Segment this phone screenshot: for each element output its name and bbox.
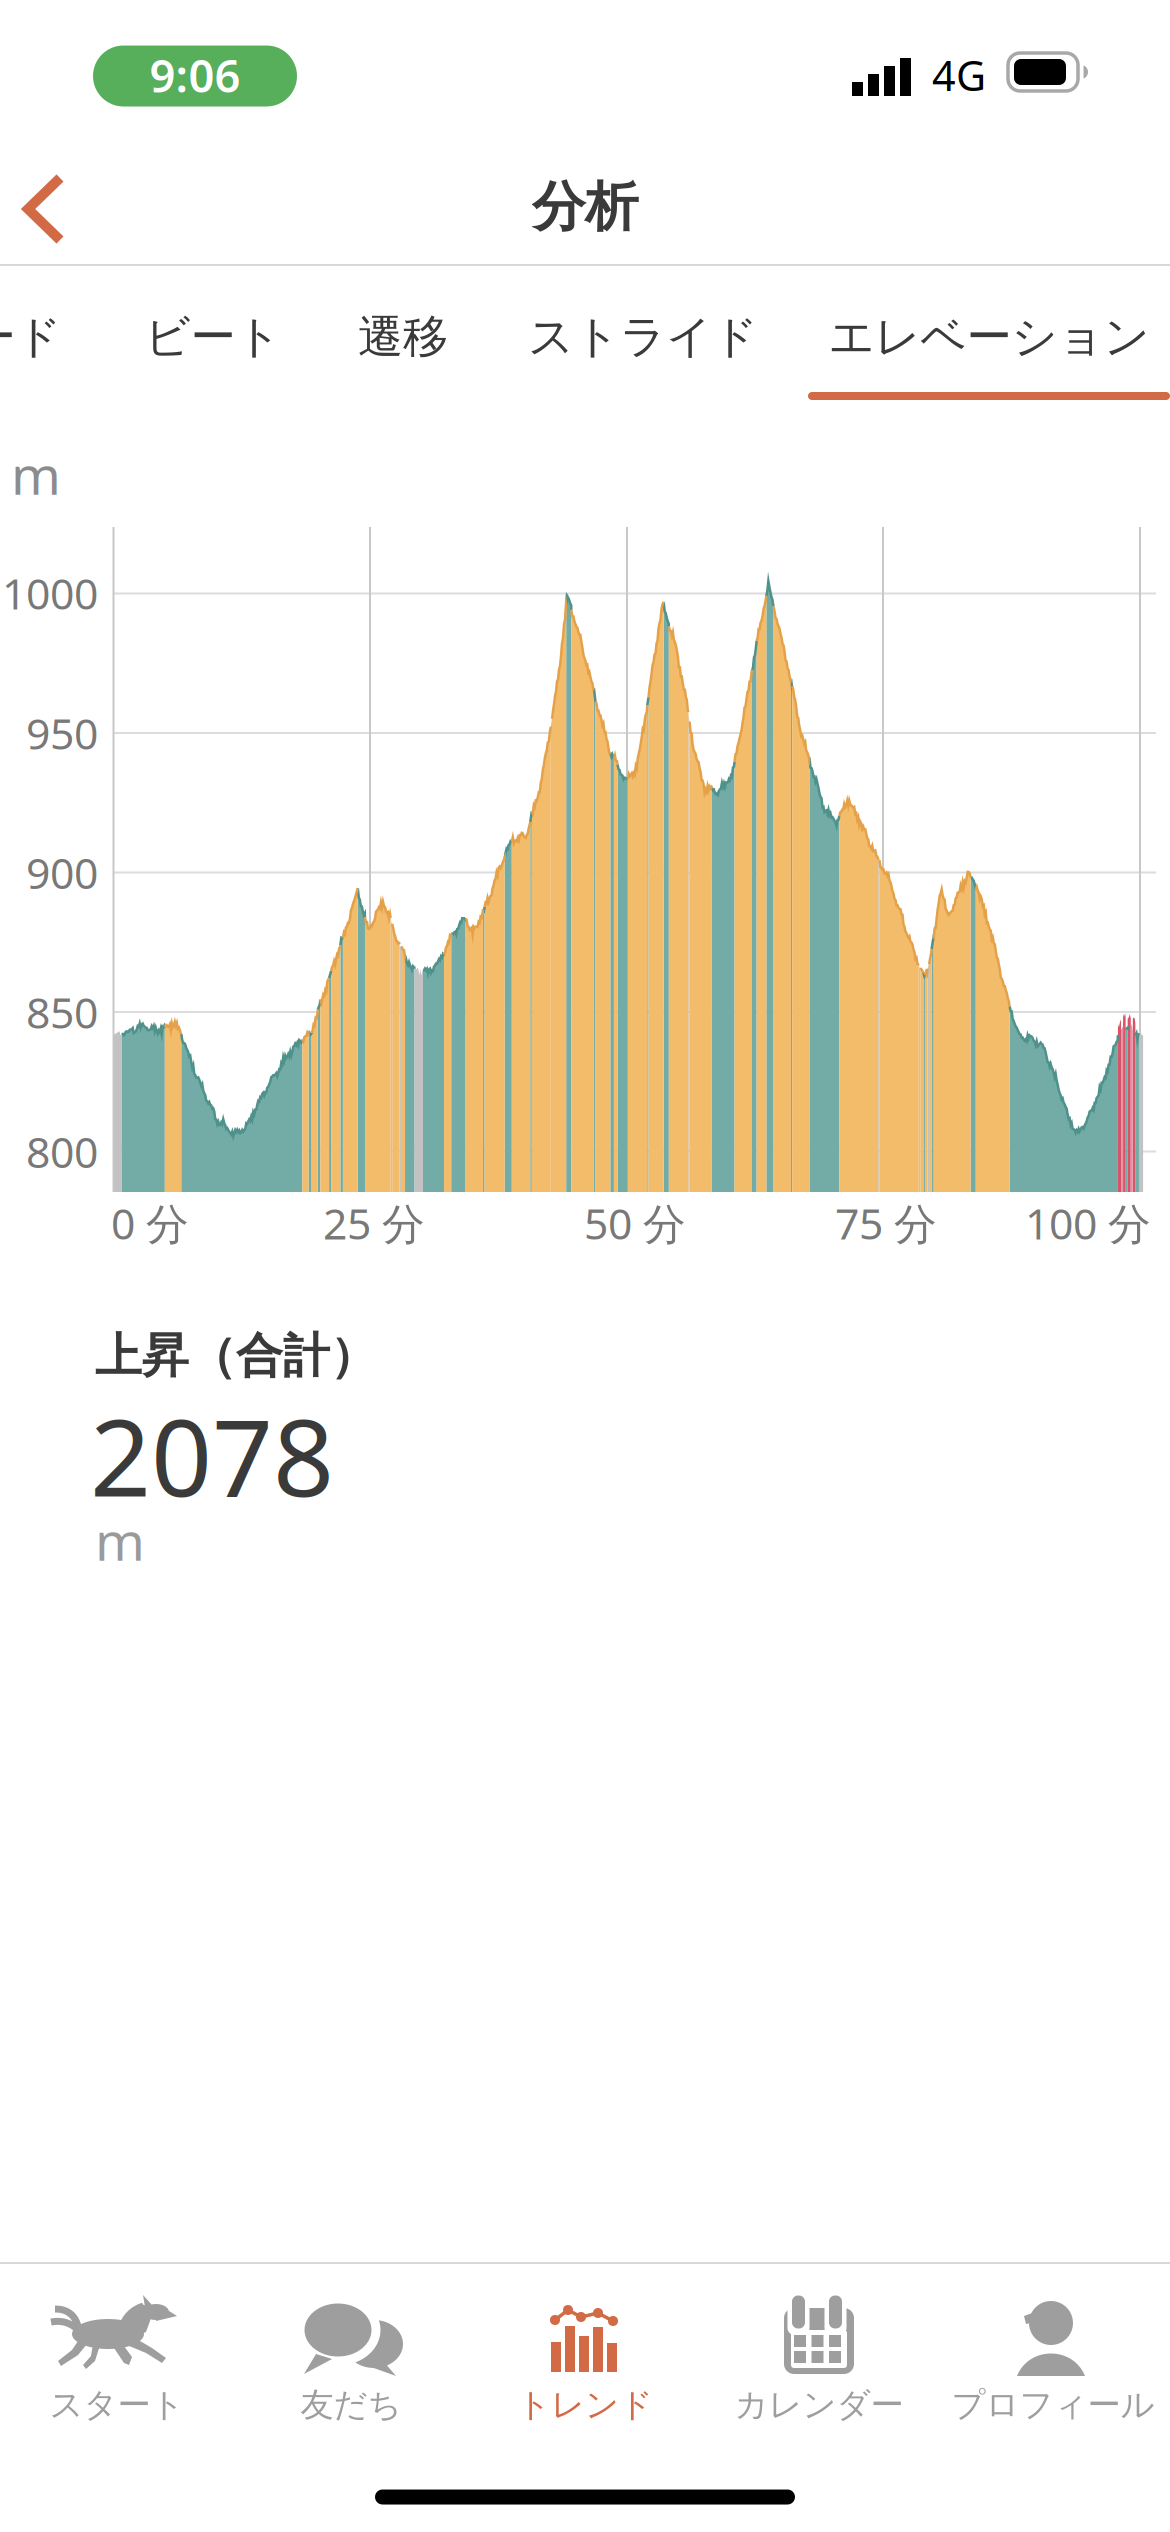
staticText: 4G xyxy=(932,48,986,102)
staticText: 遷移 xyxy=(358,309,448,365)
button[interactable]: ード xyxy=(0,309,61,365)
staticText: 2078 xyxy=(90,1384,334,1526)
button[interactable]: 遷移 xyxy=(358,309,448,365)
staticText: ード xyxy=(0,309,61,365)
staticText: 25 分 xyxy=(323,1195,425,1251)
staticText: 75 分 xyxy=(835,1195,937,1251)
staticText: ストライド xyxy=(528,309,758,365)
staticText: 0 分 xyxy=(111,1195,189,1251)
staticText: 50 分 xyxy=(584,1195,686,1251)
staticText: スタート xyxy=(49,2384,184,2425)
staticText: m xyxy=(11,439,61,509)
button[interactable]: エレベーション xyxy=(828,309,1149,365)
staticText: プロフィール xyxy=(951,2384,1154,2425)
button[interactable]: ビート xyxy=(144,309,281,365)
staticText: エレベーション xyxy=(828,309,1149,365)
staticText: カレンダー xyxy=(734,2384,903,2425)
staticText: 9:06 xyxy=(149,45,240,105)
staticText: m xyxy=(95,1505,145,1575)
staticText: 800 xyxy=(26,1123,98,1180)
staticText: ビート xyxy=(144,309,281,365)
staticText: トレンド xyxy=(517,2384,653,2425)
button[interactable]: 友だち xyxy=(234,2264,468,2440)
staticText: 850 xyxy=(26,984,98,1040)
staticText: 友だち xyxy=(300,2384,401,2425)
staticText: 分析 xyxy=(532,174,638,240)
button[interactable]: カレンダー xyxy=(702,2264,936,2440)
button[interactable]: スタート xyxy=(0,2264,234,2440)
button[interactable]: プロフィール xyxy=(936,2264,1170,2440)
staticText: 1000 xyxy=(2,565,98,621)
button[interactable]: ストライド xyxy=(528,309,758,365)
staticText: 950 xyxy=(26,705,98,761)
staticText: 上昇（合計） xyxy=(95,1327,377,1385)
staticText: 900 xyxy=(26,844,98,901)
button[interactable]: トレンド xyxy=(468,2264,702,2440)
staticText: 100 分 xyxy=(1025,1195,1151,1251)
button[interactable]: Back xyxy=(16,172,76,246)
